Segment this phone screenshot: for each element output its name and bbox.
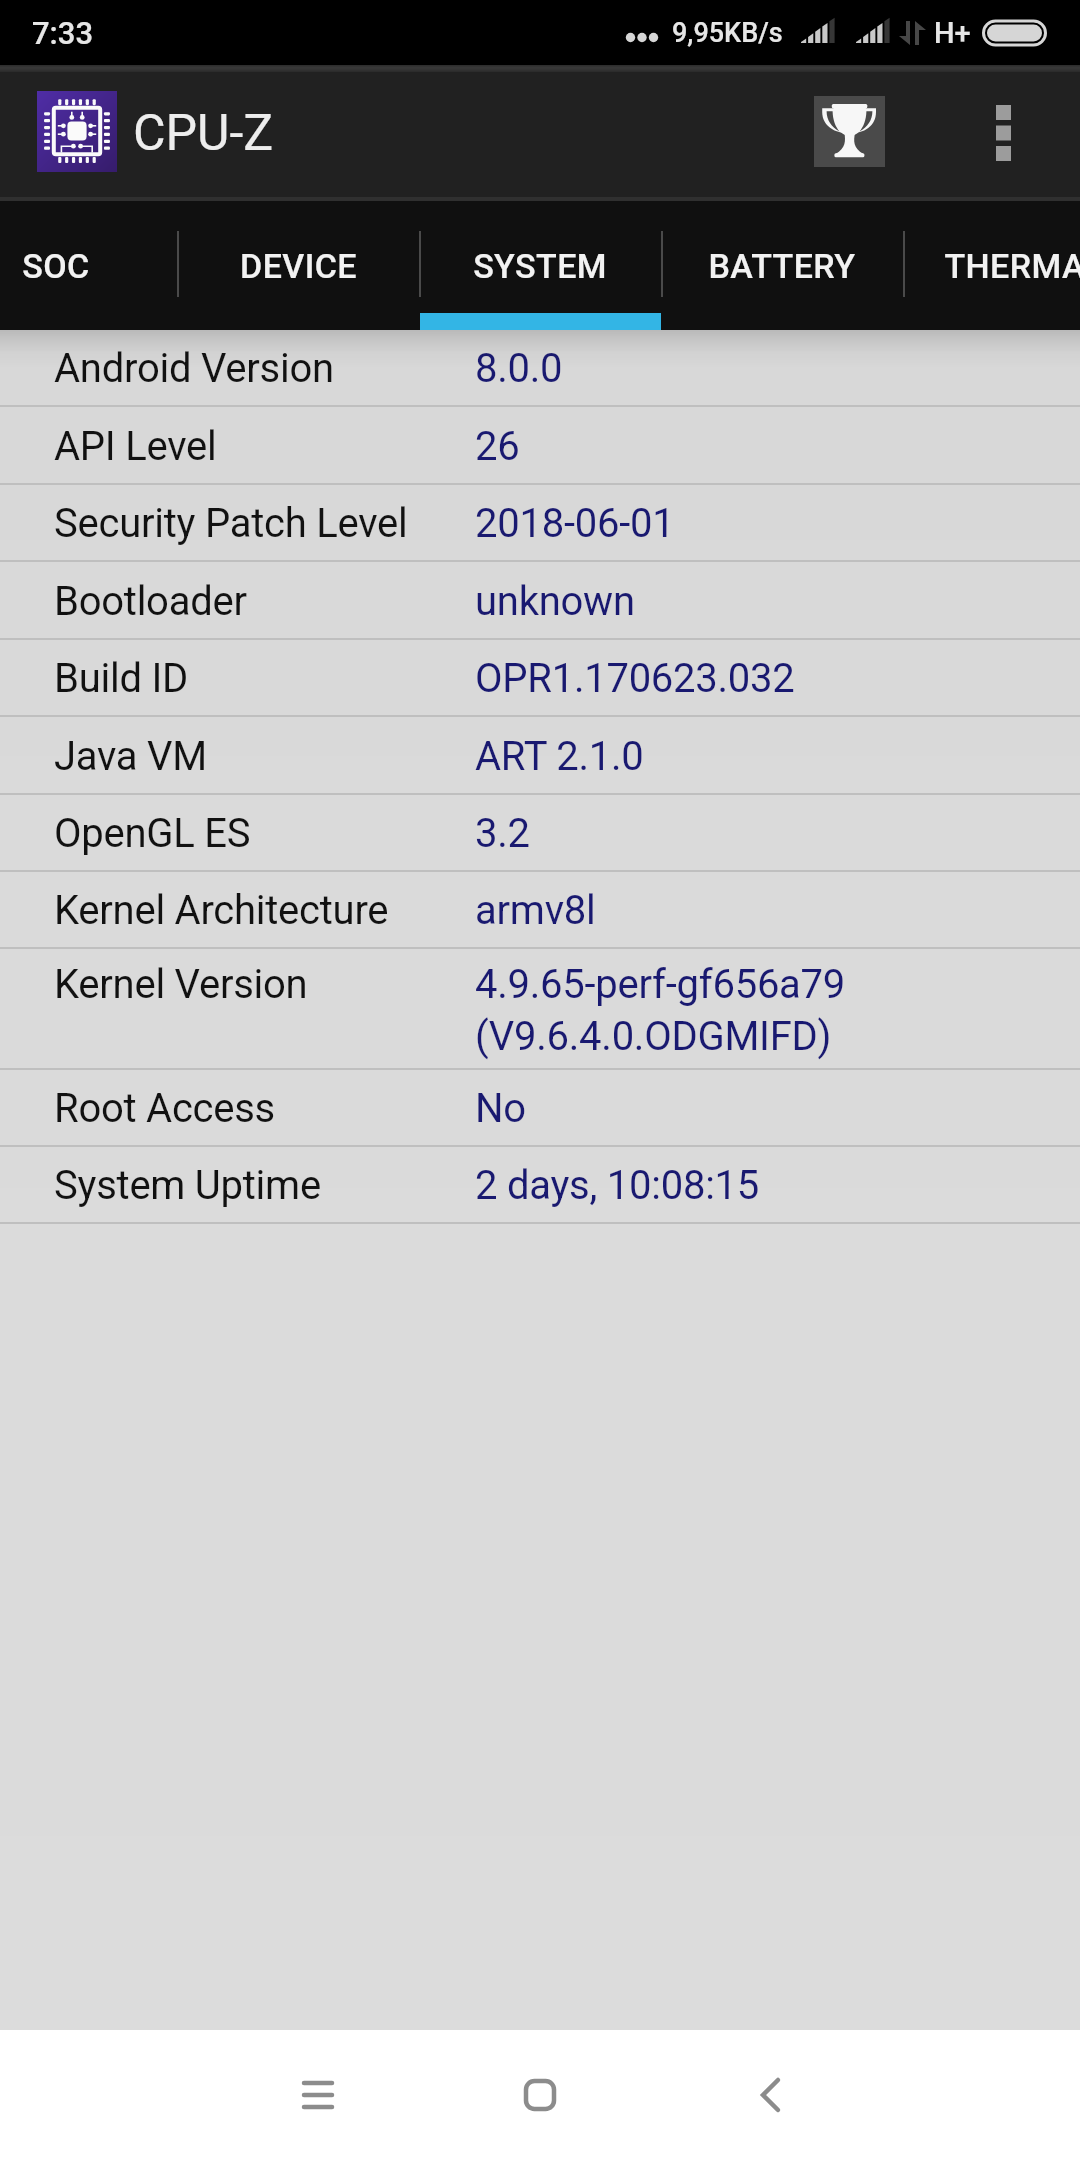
staticText: 9,95KB/s <box>672 17 783 49</box>
staticText: OpenGL ES <box>54 810 475 857</box>
staticText: No <box>475 1085 526 1132</box>
button[interactable]: API Level <box>0 407 1080 485</box>
button[interactable]: DEVICE <box>177 201 419 330</box>
staticText: 3.2 <box>475 810 530 857</box>
staticText: OPR1.170623.032 <box>475 655 795 702</box>
staticText: H+ <box>934 16 971 50</box>
button[interactable]: Security Patch Level <box>0 485 1080 562</box>
staticText: 8.0.0 <box>475 345 563 392</box>
staticText: armv8l <box>475 887 596 934</box>
staticText: Root Access <box>54 1085 475 1132</box>
staticText: API Level <box>54 423 475 470</box>
button[interactable]: CPU-Z <box>37 91 117 172</box>
button[interactable]: System Uptime <box>0 1147 1080 1224</box>
staticText: DEVICE <box>240 246 357 286</box>
staticText: Security Patch Level <box>54 500 475 547</box>
button[interactable]: Kernel Architecture <box>0 872 1080 949</box>
button[interactable]: Kernel Version <box>0 949 1080 1070</box>
button[interactable]: Android Version <box>0 330 1080 407</box>
button[interactable]: More options <box>963 65 1043 201</box>
button[interactable]: THERMAL <box>903 201 1080 330</box>
button[interactable]: Recent apps <box>248 2030 388 2160</box>
staticText: Java VM <box>54 733 475 780</box>
button[interactable]: OpenGL ES <box>0 795 1080 872</box>
staticText: Kernel Version <box>54 961 475 1008</box>
staticText: 4.9.65-perf-gf656a79 (V9.6.4.0.ODGMIFD) <box>475 961 846 1060</box>
staticText: ART 2.1.0 <box>475 733 644 780</box>
staticText: BATTERY <box>708 246 856 286</box>
staticText: Kernel Architecture <box>54 887 475 934</box>
button[interactable]: Benchmark ranking <box>814 96 885 167</box>
button[interactable]: BATTERY <box>661 201 903 330</box>
staticText: System Uptime <box>54 1162 475 1209</box>
staticText: Build ID <box>54 655 475 702</box>
staticText: SYSTEM <box>473 246 607 286</box>
staticText: Bootloader <box>54 578 475 625</box>
staticText: 2018-06-01 <box>475 500 675 547</box>
staticText: SOC <box>22 246 90 286</box>
button[interactable]: Build ID <box>0 640 1080 717</box>
button[interactable]: Root Access <box>0 1070 1080 1147</box>
button[interactable]: SOC <box>0 201 177 330</box>
button[interactable]: Home <box>470 2030 610 2160</box>
staticText: 7:33 <box>32 15 94 51</box>
staticText: 26 <box>475 423 520 470</box>
staticText: Android Version <box>54 345 475 392</box>
button[interactable]: Back <box>703 2030 843 2160</box>
staticText: THERMAL <box>944 246 1080 286</box>
button[interactable]: Java VM <box>0 717 1080 795</box>
staticText: 2 days, 10:08:15 <box>475 1162 760 1209</box>
staticText: unknown <box>475 578 635 625</box>
button[interactable]: Bootloader <box>0 562 1080 640</box>
staticText: CPU-Z <box>133 104 274 163</box>
button[interactable]: SYSTEM <box>419 201 661 330</box>
